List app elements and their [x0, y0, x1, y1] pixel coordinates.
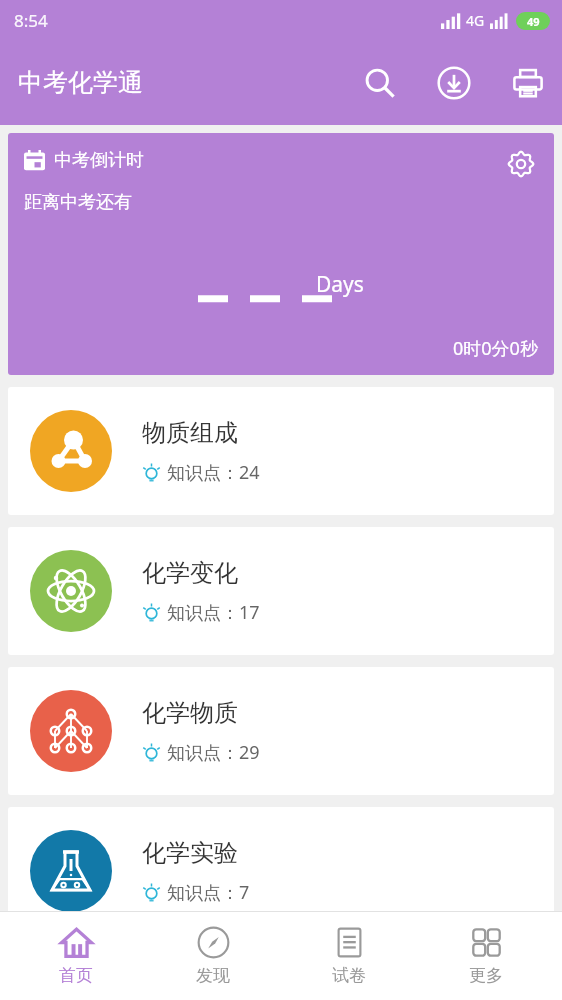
staticText: 知识点：7 [167, 880, 250, 905]
staticText: 中考倒计时 [54, 149, 144, 172]
button[interactable]: 发现 [153, 920, 273, 992]
button[interactable]: Search [356, 59, 404, 107]
staticText: 发现 [196, 965, 230, 986]
button[interactable]: Settings [502, 145, 540, 183]
staticText: 更多 [469, 965, 503, 986]
staticText: 0时0分0秒 [453, 336, 538, 361]
button[interactable]: 试卷 [289, 920, 409, 992]
button[interactable]: 首页 [16, 920, 136, 992]
staticText: 物质组成 [142, 418, 238, 448]
staticText: 首页 [59, 965, 93, 986]
button[interactable]: 化学变化 [8, 527, 554, 655]
button[interactable]: 化学物质 [8, 667, 554, 795]
staticText: Days [316, 270, 364, 299]
staticText: 化学物质 [142, 698, 238, 728]
button[interactable]: 化学实验 [8, 807, 554, 935]
button[interactable]: Download [430, 59, 478, 107]
staticText: 知识点：29 [167, 740, 260, 765]
staticText: 49 [527, 14, 540, 29]
button[interactable]: Print [504, 59, 552, 107]
staticText: 化学变化 [142, 558, 238, 588]
staticText: 知识点：17 [167, 600, 260, 625]
staticText: 4G [466, 11, 485, 30]
staticText: 8:54 [14, 9, 48, 32]
button[interactable]: 更多 [426, 920, 546, 992]
staticText: 中考化学通 [18, 67, 143, 98]
staticText: 试卷 [332, 965, 366, 986]
staticText: 化学实验 [142, 838, 238, 868]
button[interactable]: 中考倒计时 [8, 133, 554, 375]
button[interactable]: 物质组成 [8, 387, 554, 515]
staticText: 知识点：24 [167, 460, 260, 485]
staticText: 距离中考还有 [24, 191, 132, 214]
